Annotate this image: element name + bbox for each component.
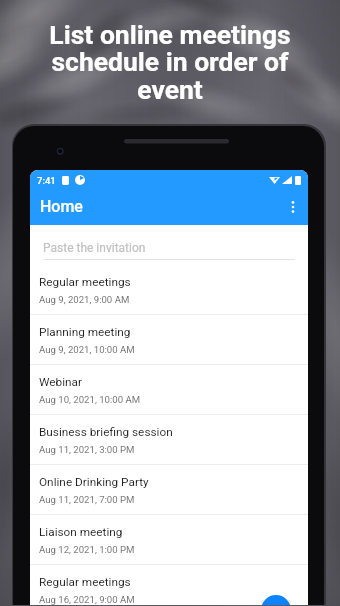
staticText: Webinar xyxy=(39,375,82,389)
staticText: Paste the invitation xyxy=(43,241,146,255)
staticText: 7:41 xyxy=(37,175,56,186)
button[interactable]: Business briefing session xyxy=(30,415,308,465)
button[interactable]: Regular meetings xyxy=(30,565,308,605)
staticText: Aug 11, 2021, 7:00 PM xyxy=(39,494,135,505)
button[interactable]: Webinar xyxy=(30,365,308,415)
staticText: Liaison meeting xyxy=(39,525,123,539)
staticText: Business briefing session xyxy=(39,425,173,439)
staticText: Regular meetings xyxy=(39,275,131,289)
staticText: Online Drinking Party xyxy=(39,475,149,489)
staticText: List online meetings schedule in order o… xyxy=(0,19,340,105)
button[interactable]: Liaison meeting xyxy=(30,515,308,565)
staticText: Aug 12, 2021, 1:00 PM xyxy=(39,544,135,555)
button[interactable]: Add meeting xyxy=(261,595,291,605)
staticText: Regular meetings xyxy=(39,575,131,589)
staticText: Home xyxy=(40,197,83,216)
staticText: Planning meeting xyxy=(39,325,131,339)
staticText: Aug 10, 2021, 10:00 AM xyxy=(39,394,141,405)
button[interactable]: Regular meetings xyxy=(30,265,308,315)
button[interactable]: Online Drinking Party xyxy=(30,465,308,515)
button[interactable]: Planning meeting xyxy=(30,315,308,365)
button[interactable]: Paste the invitation xyxy=(30,225,308,265)
staticText: Aug 11, 2021, 3:00 PM xyxy=(39,444,135,455)
staticText: Aug 9, 2021, 10:00 AM xyxy=(39,344,135,355)
staticText: Aug 16, 2021, 9:00 AM xyxy=(39,594,135,605)
button[interactable]: More options xyxy=(280,194,306,220)
staticText: Aug 9, 2021, 9:00 AM xyxy=(39,294,130,305)
